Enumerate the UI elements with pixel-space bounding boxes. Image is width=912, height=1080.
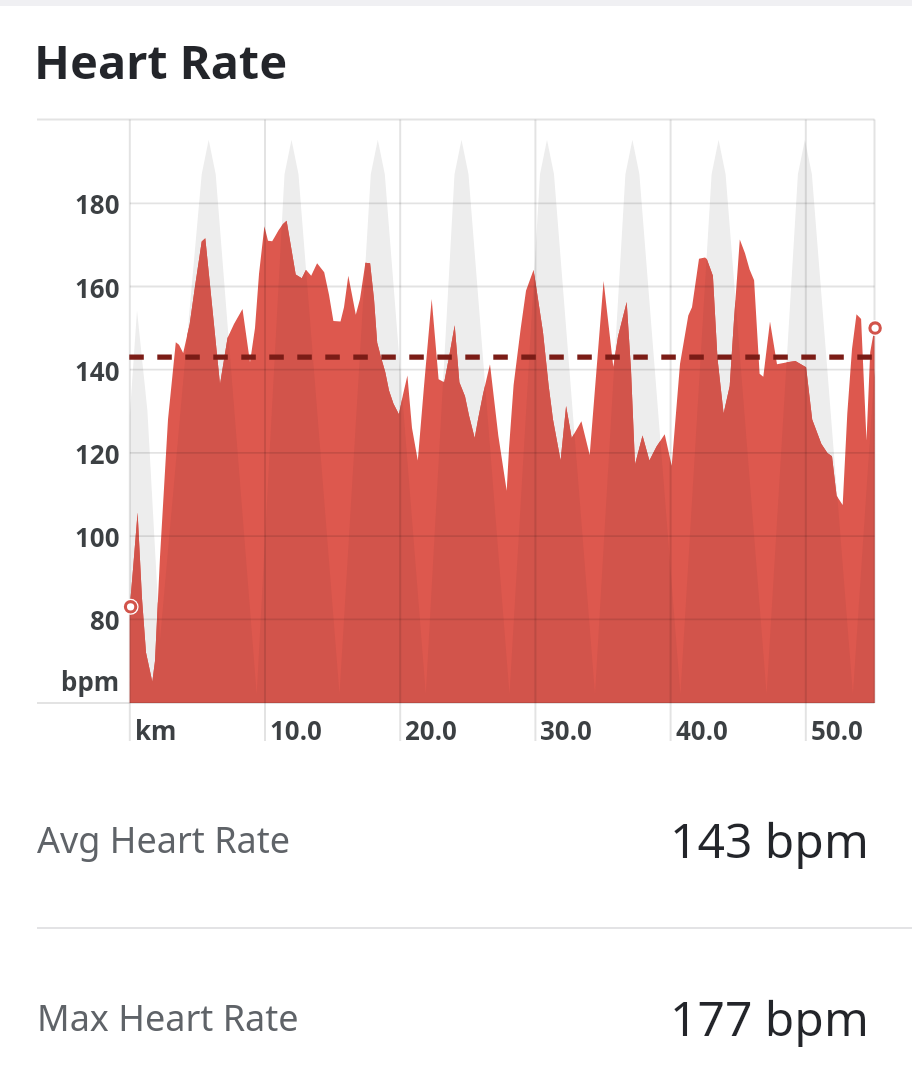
staticText: 40.0 (676, 712, 728, 747)
staticText: 80 (90, 602, 120, 637)
staticText: 10.0 (270, 712, 322, 747)
staticText: Avg Heart Rate (37, 815, 291, 864)
staticText: 177 bpm (670, 985, 869, 1050)
staticText: 100 (75, 519, 120, 554)
staticText: Max Heart Rate (37, 993, 299, 1042)
staticText: 20.0 (405, 712, 457, 747)
staticText: 160 (75, 270, 120, 305)
button[interactable]: Max Heart Rate (0, 929, 912, 1080)
staticText: 120 (75, 436, 120, 471)
staticText: 143 bpm (670, 807, 869, 872)
staticText: 140 (75, 353, 120, 388)
staticText: 30.0 (540, 712, 592, 747)
staticText: km (135, 712, 177, 747)
button[interactable]: Avg Heart Rate (0, 751, 912, 927)
staticText: 50.0 (811, 712, 863, 747)
staticText: 180 (75, 186, 120, 221)
staticText: Heart Rate (34, 29, 288, 93)
staticText: bpm (61, 663, 120, 698)
